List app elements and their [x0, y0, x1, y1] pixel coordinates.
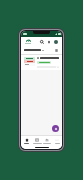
button[interactable]: Search — [39, 39, 45, 45]
button[interactable]: My learning — [32, 136, 42, 146]
button[interactable]: Create — [52, 125, 59, 132]
button[interactable]: Filter — [54, 48, 59, 53]
button[interactable]: Community — [42, 136, 52, 146]
button[interactable]: Profile — [53, 39, 59, 45]
button[interactable]: Notifications — [46, 39, 52, 45]
button[interactable]: More — [52, 136, 62, 146]
button[interactable] — [24, 48, 44, 52]
button[interactable]: Home — [21, 136, 32, 146]
button[interactable]: Home logo — [24, 39, 32, 45]
button[interactable] — [21, 55, 62, 70]
